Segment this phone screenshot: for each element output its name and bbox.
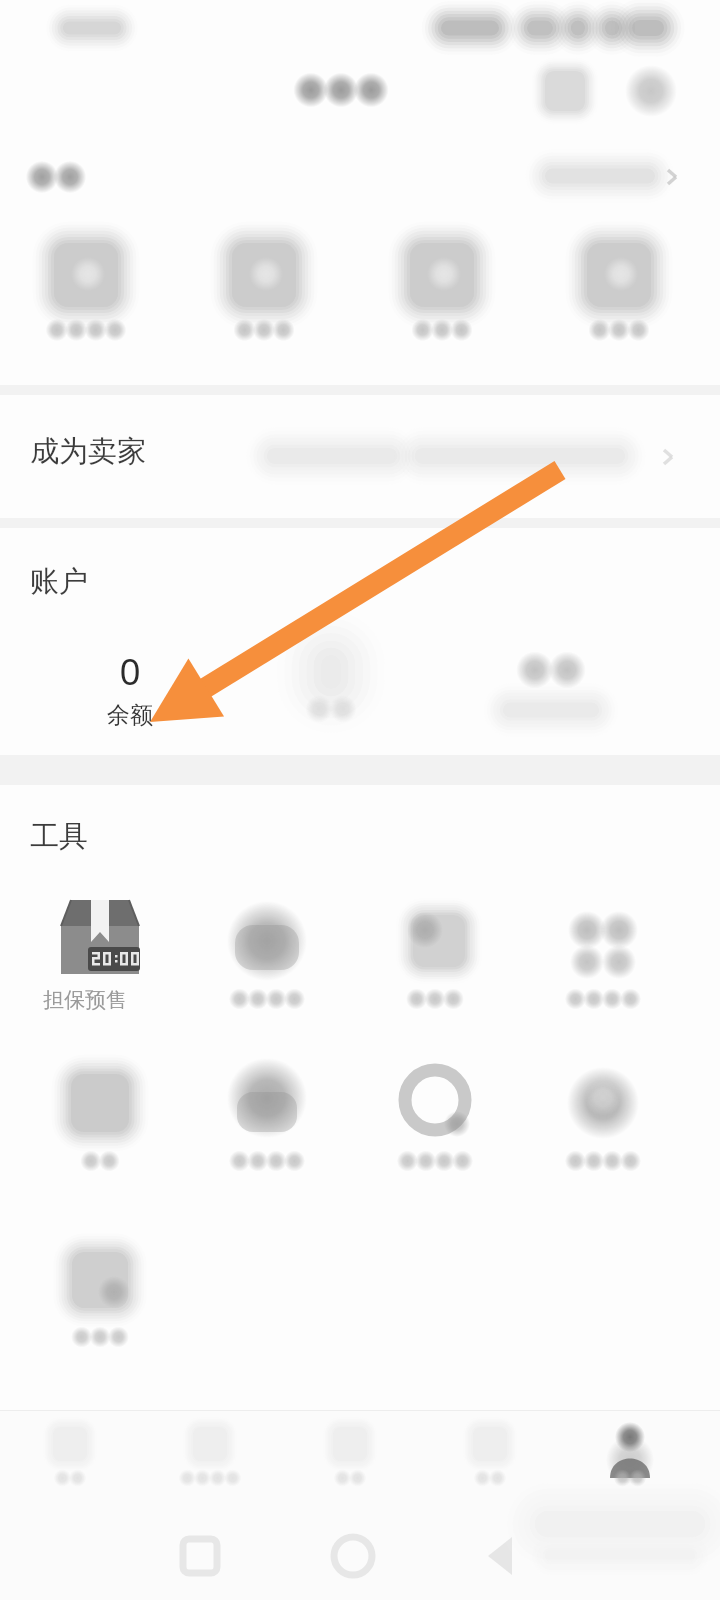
button[interactable]: 工具 4 (528, 900, 680, 1020)
staticText: 0 (119, 645, 141, 695)
button[interactable]: 订单状态 1 (8, 240, 178, 360)
button[interactable]: 担保预售 (43, 987, 127, 1013)
button[interactable]: 工具 7 (360, 1062, 512, 1182)
button[interactable]: 工具 5 (24, 1062, 176, 1182)
button[interactable]: 购物车 (288, 1411, 432, 1503)
button[interactable]: 订单状态 3 (364, 240, 534, 360)
button[interactable]: Recents (165, 1521, 235, 1591)
staticText: 成为卖家 (30, 433, 146, 470)
staticText: 余额 (107, 701, 153, 730)
staticText: 账户 (30, 563, 88, 600)
button[interactable]: 工具 2 (192, 900, 344, 1020)
button[interactable]: 订单状态 4 (542, 240, 712, 360)
button[interactable]: 首页 (0, 1411, 144, 1503)
button[interactable]: 查看全部订单 (520, 152, 695, 200)
button[interactable]: 分类 (144, 1411, 288, 1503)
button[interactable] (480, 645, 630, 740)
button[interactable]: 0 (60, 645, 200, 730)
button[interactable]: 消息 (432, 1411, 576, 1503)
button[interactable]: 我的 (576, 1411, 720, 1503)
button[interactable]: Home (318, 1521, 388, 1591)
button[interactable]: 消息 (537, 63, 593, 119)
button[interactable]: 工具 9 (24, 1240, 176, 1360)
button[interactable]: 工具 8 (528, 1062, 680, 1182)
button[interactable]: 成为卖家 (0, 395, 720, 518)
button[interactable]: 工具 1 (24, 900, 176, 1020)
button[interactable]: 工具 6 (192, 1062, 344, 1182)
staticText: 工具 (30, 818, 88, 855)
button[interactable]: 订单状态 2 (186, 240, 356, 360)
button[interactable]: 设置 (623, 63, 679, 119)
button[interactable]: 工具 3 (360, 900, 512, 1020)
button[interactable] (260, 645, 410, 740)
button[interactable]: Back (468, 1521, 538, 1591)
